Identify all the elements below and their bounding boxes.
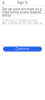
staticText: Sign In [17, 1, 28, 4]
staticText: Set up your account so you can [2, 7, 45, 11]
button[interactable]: Continue [3, 46, 42, 51]
staticText: away [2, 13, 11, 17]
staticText: start using every feature right [2, 10, 45, 14]
button[interactable]: Back [1, 0, 5, 5]
staticText: and continue to the next step [2, 22, 45, 25]
staticText: Enter your details below [2, 19, 37, 22]
staticText: Continue [15, 47, 29, 51]
